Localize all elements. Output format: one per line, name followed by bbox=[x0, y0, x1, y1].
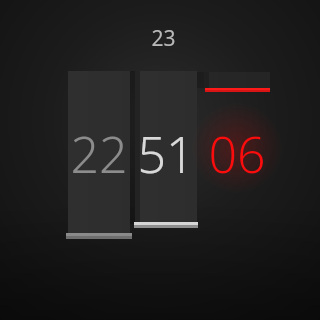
button[interactable]: Date 23 bbox=[133, 24, 193, 53]
button[interactable]: Date 23 bbox=[0, 0, 320, 320]
button[interactable]: Seconds 06 bbox=[203, 72, 271, 232]
button[interactable]: Hours 22 bbox=[68, 71, 130, 237]
staticText: 06 bbox=[208, 120, 266, 188]
staticText: 51 bbox=[137, 120, 195, 188]
staticText: 22 bbox=[70, 120, 128, 188]
staticText: 23 bbox=[151, 24, 176, 53]
button[interactable]: Minutes 51 bbox=[135, 71, 197, 224]
